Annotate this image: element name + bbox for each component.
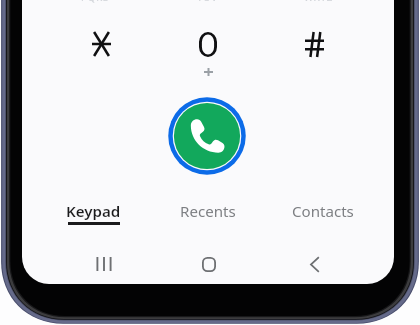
staticText: Keypad xyxy=(66,201,121,222)
staticText: Recents xyxy=(180,201,236,222)
staticText: Contacts xyxy=(292,201,354,222)
button[interactable] xyxy=(266,14,362,76)
staticText: WXYZ xyxy=(304,0,334,3)
button[interactable]: Recents xyxy=(156,192,260,236)
staticText: PQRS xyxy=(81,0,110,3)
button[interactable]: Back xyxy=(288,244,340,284)
button[interactable]: Home xyxy=(183,244,235,284)
button[interactable]: Recent apps xyxy=(78,244,130,284)
button[interactable]: Keypad xyxy=(41,192,145,236)
button[interactable]: Contacts xyxy=(271,192,375,236)
button[interactable]: Call xyxy=(167,96,247,176)
button[interactable] xyxy=(160,14,256,82)
staticText: TUV xyxy=(197,0,218,3)
button[interactable] xyxy=(53,14,149,76)
